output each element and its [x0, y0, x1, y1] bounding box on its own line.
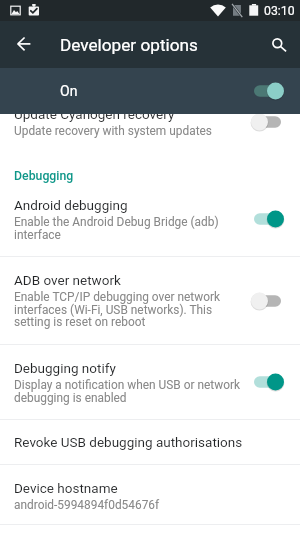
button[interactable]: Device hostname — [0, 465, 300, 524]
staticText: Update Cyanogen recovery — [14, 106, 175, 122]
staticText: Device hostname — [14, 480, 118, 496]
button[interactable]: Android debugging — [0, 182, 300, 256]
staticText: Enable the Android Debug Bridge (adb) in… — [14, 215, 245, 242]
staticText: Developer options — [60, 35, 198, 55]
staticText: Update recovery with system updates — [14, 124, 212, 138]
staticText: Enable TCP/IP debugging over network int… — [14, 290, 245, 329]
button[interactable]: Debugging notify — [0, 345, 300, 419]
staticText: 03:10 — [264, 4, 295, 18]
button[interactable]: ADB over network — [0, 257, 300, 344]
button[interactable]: Update Cyanogen recovery — [0, 114, 300, 148]
staticText: On — [60, 83, 78, 99]
staticText: ADB over network — [14, 272, 121, 288]
button[interactable]: Revoke USB debugging authorisations — [0, 420, 300, 464]
button[interactable]: Search — [259, 26, 296, 63]
staticText: android-5994894f0d54676f — [14, 498, 160, 512]
staticText: Android debugging — [14, 197, 128, 213]
staticText: Display a notification when USB or netwo… — [14, 378, 245, 405]
button[interactable]: Navigate up — [5, 26, 42, 63]
staticText: Debugging — [14, 169, 74, 183]
staticText: Revoke USB debugging authorisations — [14, 434, 243, 450]
staticText: Debugging notify — [14, 360, 116, 376]
button[interactable]: On — [0, 68, 300, 114]
